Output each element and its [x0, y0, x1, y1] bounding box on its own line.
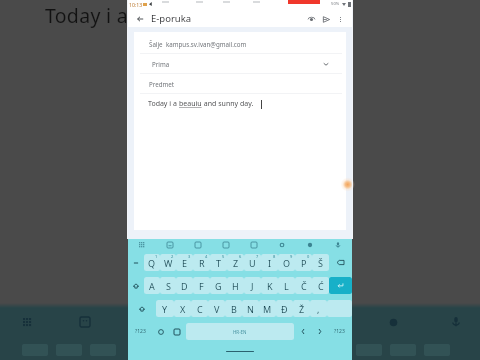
- button[interactable]: Clipboard: [212, 239, 240, 251]
- button[interactable]: O: [278, 254, 295, 271]
- button[interactable]: GIF: [184, 239, 212, 251]
- button[interactable]: Č: [295, 277, 312, 294]
- staticText: P: [301, 257, 307, 269]
- button[interactable]: J: [244, 277, 261, 294]
- staticText: Z: [233, 257, 239, 269]
- staticText: Prima: [152, 60, 170, 68]
- staticText: and sunny day.: [202, 99, 254, 109]
- staticText: B: [231, 303, 237, 315]
- button[interactable]: Ć: [312, 277, 329, 294]
- staticText: 2: [171, 254, 174, 259]
- button[interactable]: Š: [312, 254, 329, 271]
- staticText: 50%: [331, 1, 340, 7]
- button[interactable]: Ž: [293, 300, 310, 317]
- button[interactable]: M: [259, 300, 276, 317]
- staticText: 8: [273, 254, 276, 259]
- button[interactable]: Emoji: [153, 323, 169, 340]
- button[interactable]: Z: [227, 254, 244, 271]
- button[interactable]: Move cursor right: [311, 323, 327, 340]
- staticText: Đ: [281, 303, 288, 315]
- button[interactable]: Settings: [169, 323, 185, 340]
- button[interactable]: Backspace: [327, 300, 352, 317]
- button[interactable]: ?123: [128, 320, 153, 343]
- button[interactable]: R: [193, 254, 210, 271]
- staticText: 9: [290, 254, 293, 259]
- button[interactable]: Back: [132, 11, 148, 27]
- button[interactable]: Đ: [276, 300, 293, 317]
- staticText: 3: [188, 254, 191, 259]
- staticText: kampus.sv.ivan@gmail.com: [166, 40, 247, 48]
- button[interactable]: W: [160, 254, 176, 271]
- staticText: ?123: [334, 328, 345, 335]
- staticText: HR-EN: [233, 329, 247, 335]
- staticText: D: [181, 280, 188, 292]
- button[interactable]: T: [210, 254, 227, 271]
- button[interactable]: E: [176, 254, 193, 271]
- button[interactable]: Emoji: [296, 239, 324, 251]
- button[interactable]: Y: [156, 300, 174, 317]
- staticText: X: [180, 303, 186, 315]
- button[interactable]: C: [191, 300, 208, 317]
- button[interactable]: Send: [319, 12, 334, 27]
- button[interactable]: Shift: [128, 300, 156, 317]
- button[interactable]: L: [278, 277, 295, 294]
- staticText: 4: [205, 254, 208, 259]
- staticText: J: [251, 280, 254, 292]
- button[interactable]: V: [208, 300, 225, 317]
- staticText: Today i a: [148, 99, 179, 109]
- button[interactable]: Backspace: [329, 254, 352, 271]
- button[interactable]: Attach file: [304, 12, 319, 27]
- staticText: U: [249, 257, 256, 269]
- staticText: Ć: [318, 280, 324, 292]
- button[interactable]: Translate: [240, 239, 268, 251]
- button[interactable]: D: [176, 277, 193, 294]
- staticText: Today i a be: [45, 2, 157, 29]
- staticText: Ž: [299, 303, 305, 315]
- staticText: Š: [318, 257, 323, 269]
- staticText: 7: [256, 254, 259, 259]
- staticText: Č: [301, 280, 307, 292]
- staticText: L: [284, 280, 289, 292]
- button[interactable]: Move cursor left: [295, 323, 311, 340]
- staticText: H: [232, 280, 239, 292]
- button[interactable]: HR-EN: [186, 323, 294, 340]
- button[interactable]: X: [174, 300, 191, 317]
- button[interactable]: More options: [334, 13, 347, 26]
- button[interactable]: ,: [310, 300, 327, 317]
- button[interactable]: B: [225, 300, 242, 317]
- button[interactable]: A: [144, 277, 160, 294]
- button[interactable]: Caps lock: [128, 277, 144, 294]
- button[interactable]: F: [193, 277, 210, 294]
- button[interactable]: S: [160, 277, 176, 294]
- staticText: F: [199, 280, 204, 292]
- button[interactable]: Q: [144, 254, 160, 271]
- button[interactable]: P: [295, 254, 312, 271]
- staticText: W: [164, 257, 173, 269]
- staticText: ?123: [135, 328, 146, 335]
- staticText: K: [267, 280, 273, 292]
- button[interactable]: H: [227, 277, 244, 294]
- button[interactable]: I: [261, 254, 278, 271]
- button[interactable]: N: [242, 300, 259, 317]
- button[interactable]: ?123: [327, 320, 352, 343]
- button[interactable]: Keyboard switch: [128, 239, 156, 251]
- staticText: T: [216, 257, 222, 269]
- button[interactable]: Tab: [128, 254, 144, 271]
- staticText: ,: [317, 303, 320, 315]
- staticText: Q: [148, 257, 156, 269]
- button[interactable]: K: [261, 277, 278, 294]
- button[interactable]: U: [244, 254, 261, 271]
- staticText: S: [166, 280, 171, 292]
- staticText: Predmet: [149, 80, 174, 88]
- button[interactable]: Enter: [329, 277, 352, 294]
- button[interactable]: Settings: [268, 239, 296, 251]
- button[interactable]: Stickers: [156, 239, 184, 251]
- button[interactable]: Voice input: [324, 239, 352, 251]
- staticText: E: [182, 257, 188, 269]
- staticText: 5: [222, 254, 225, 259]
- staticText: 0: [307, 254, 310, 259]
- staticText: Y: [162, 303, 168, 315]
- button[interactable]: G: [210, 277, 227, 294]
- staticText: 10:13: [129, 1, 143, 8]
- staticText: C: [197, 303, 203, 315]
